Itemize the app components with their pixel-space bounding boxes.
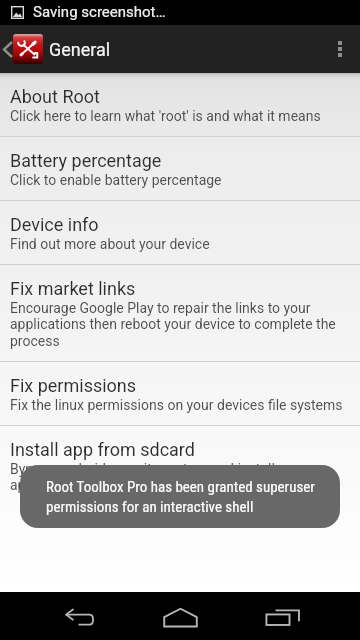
staticText: Fix market links	[10, 278, 136, 299]
button[interactable]: Recent apps	[240, 592, 360, 640]
staticText: Find out more about your device	[10, 236, 210, 252]
staticText: General	[49, 39, 111, 60]
staticText: Fix permissions	[10, 375, 137, 396]
staticText: Device info	[10, 214, 99, 235]
button[interactable]: Install app from sdcard	[0, 426, 360, 505]
staticText: Click here to learn what 'root' is and w…	[10, 108, 321, 124]
button[interactable]: Fix market links	[0, 265, 360, 361]
staticText: Click to enable battery percentage	[10, 172, 222, 188]
staticText: Battery percentage	[10, 150, 162, 171]
staticText: Fix the linux permissions on your device…	[10, 397, 343, 413]
staticText: Root Toolbox Pro has been granted superu…	[46, 478, 318, 515]
button[interactable]: Battery percentage	[0, 137, 360, 200]
button[interactable]: Navigate up	[0, 25, 43, 73]
button[interactable]: Back	[0, 592, 120, 640]
button[interactable]: More options	[320, 25, 360, 73]
staticText: Encourage Google Play to repair the link…	[10, 300, 345, 349]
button[interactable]: Fix permissions	[0, 362, 360, 425]
button[interactable]: About Root	[0, 73, 360, 136]
staticText: Bypass android security system and insta…	[10, 461, 345, 493]
staticText: Install app from sdcard	[10, 439, 195, 460]
staticText: About Root	[10, 86, 100, 107]
staticText: Saving screenshot…	[33, 3, 166, 21]
button[interactable]: Device info	[0, 201, 360, 264]
button[interactable]: Home	[120, 592, 240, 640]
